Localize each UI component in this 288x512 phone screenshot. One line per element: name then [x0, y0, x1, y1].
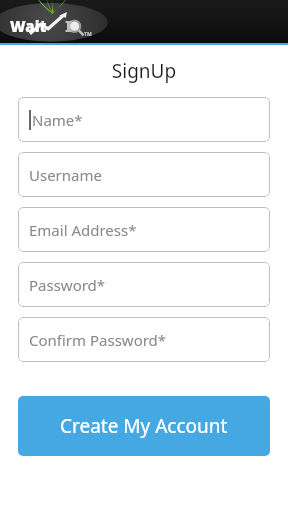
staticText: Wait: [10, 16, 47, 36]
staticText: Name*: [32, 110, 83, 130]
staticText: I: [65, 15, 73, 37]
staticText: Create My Account: [60, 413, 228, 439]
staticText: Username: [29, 165, 102, 185]
staticText: Password*: [29, 275, 106, 295]
button[interactable]: Create My Account: [18, 396, 270, 456]
staticText: SignUp: [18, 58, 270, 84]
staticText: TM: [84, 31, 92, 38]
button[interactable]: Confirm Password*: [18, 317, 270, 362]
button[interactable]: Email Address*: [18, 207, 270, 252]
button[interactable]: Password*: [18, 262, 270, 307]
button[interactable]: Name*: [18, 97, 270, 142]
staticText: Email Address*: [29, 220, 137, 240]
staticText: Confirm Password*: [29, 330, 167, 350]
button[interactable]: Username: [18, 152, 270, 197]
